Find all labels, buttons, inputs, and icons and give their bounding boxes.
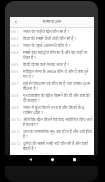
button[interactable]: प्रश्न 13 xyxy=(10,152,94,155)
button[interactable]: प्रश्न 5 xyxy=(10,61,94,68)
staticText: सूर्य से निकटतम ग्रह कौन सा है तथा उसका … xyxy=(23,81,93,91)
staticText: प्रश्न 10 xyxy=(11,117,22,122)
button[interactable]: Home xyxy=(47,155,58,166)
button[interactable]: प्रश्न 3 xyxy=(10,42,94,49)
staticText: ओलंपिक खेल कितने वर्ष बाद आयोजित किए जात… xyxy=(23,117,93,127)
button[interactable]: प्रश्न 9 xyxy=(10,104,94,116)
button[interactable]: प्रश्न 4 xyxy=(10,49,94,61)
staticText: प्रश्न 9 xyxy=(11,105,22,110)
button[interactable]: प्रश्न 7 xyxy=(10,80,94,92)
staticText: कंप्यूटर का पिता किसे कहा जाता है ? xyxy=(23,153,93,154)
staticText: प्रश्न 4 xyxy=(11,50,22,55)
button[interactable]: प्रश्न 12 xyxy=(10,140,94,152)
button[interactable]: Recents xyxy=(69,155,80,166)
staticText: प्रश्न 8 xyxy=(11,93,22,98)
button[interactable]: प्रश्न 11 xyxy=(10,128,94,140)
staticText: सबसे बड़ा महाद्वीप कौन सा है और वह कहाँ … xyxy=(23,50,93,60)
staticText: भारत के पहले प्रधानमंत्री कौन थे ? xyxy=(23,43,93,48)
staticText: प्रश्न 7 xyxy=(11,81,22,86)
button[interactable]: Back xyxy=(25,155,36,166)
staticText: प्रश्न 2 xyxy=(11,36,22,41)
staticText: भारत में कुल कितने राज्य हैं और कितने के… xyxy=(23,105,93,115)
staticText: सामान्य ज्ञान xyxy=(21,19,83,25)
staticText: भारत का राष्ट्रीय खेल कौन सा है ? xyxy=(23,29,93,34)
button[interactable]: प्रश्न 1 xyxy=(10,28,94,35)
staticText: प्रश्न 3 xyxy=(11,43,22,48)
button[interactable]: प्रश्न 6 xyxy=(10,68,94,80)
staticText: प्रश्न 1 xyxy=(11,29,22,34)
staticText: विश्व की सबसे ऊँची चोटी कौन सी है ? xyxy=(23,36,93,41)
staticText: प्रश्न 11 xyxy=(11,129,22,134)
staticText: दुनिया की सबसे लम्बी नदी कौन सी है और कह… xyxy=(23,141,93,151)
button[interactable]: Back xyxy=(10,17,21,27)
button[interactable]: प्रश्न 10 xyxy=(10,116,94,128)
staticText: हिन्दी दिवस कब मनाया जाता है ? xyxy=(23,62,93,67)
staticText: गुरुत्वाकर्षण की खोज किसने की थी और कब क… xyxy=(23,93,93,103)
staticText: जल का रासायनिक सूत्र क्या होता है और क्य… xyxy=(23,129,93,139)
button[interactable]: प्रश्न 8 xyxy=(10,92,94,104)
button[interactable]: प्रश्न 2 xyxy=(10,35,94,42)
staticText: प्रश्न 5 xyxy=(11,62,22,67)
staticText: प्रश्न 6 xyxy=(11,69,22,74)
staticText: प्रश्न 12 xyxy=(11,141,22,146)
staticText: संविधान सभा के अध्यक्ष कौन थे और वे कब च… xyxy=(23,69,93,79)
